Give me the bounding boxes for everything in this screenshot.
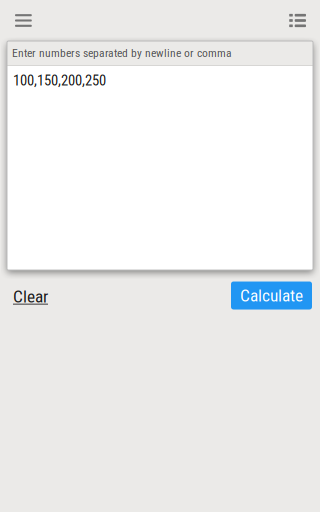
staticText: 100,150,200,250 [13,72,106,89]
button[interactable]: Calculate [231,281,312,309]
staticText: Calculate [240,285,303,306]
button[interactable]: History [275,0,320,41]
button[interactable]: Clear [0,279,56,314]
staticText: Clear [13,286,48,307]
button[interactable]: Menu [0,0,46,41]
staticText: Enter numbers separated by newline or co… [12,46,232,60]
